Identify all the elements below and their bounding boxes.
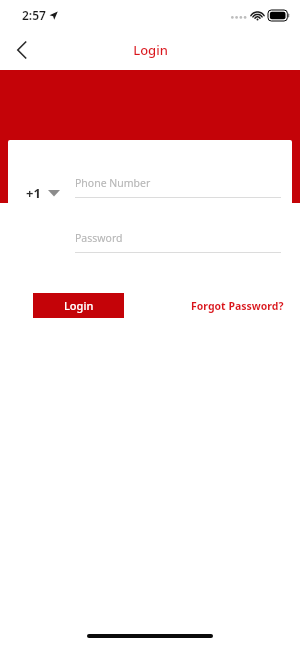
staticText: +1 — [26, 184, 41, 202]
button[interactable]: Password — [75, 231, 281, 253]
button[interactable]: Phone Number — [75, 176, 281, 198]
staticText: Forgot Password? — [191, 299, 284, 313]
staticText: Login — [64, 298, 94, 313]
button[interactable]: Forgot Password? — [191, 293, 284, 318]
staticText: Phone Number — [75, 176, 151, 190]
staticText: 2:57 — [22, 7, 46, 23]
button[interactable]: Login — [33, 293, 124, 318]
staticText: Login — [133, 41, 168, 59]
staticText: Password — [75, 231, 123, 245]
button[interactable]: Select country code — [26, 184, 60, 202]
button[interactable]: Back — [0, 30, 44, 70]
